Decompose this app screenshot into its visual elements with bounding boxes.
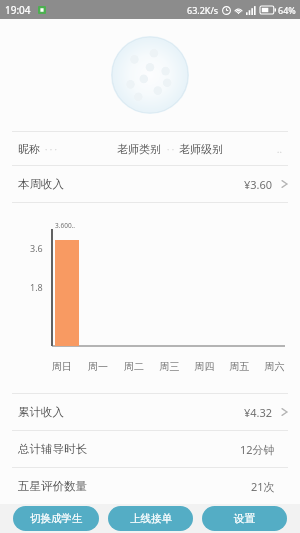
staticText: ¥4.32 [244, 405, 273, 420]
button[interactable]: 五星评价数量 [0, 468, 300, 504]
button[interactable]: 头像 [111, 36, 189, 114]
staticText: 周五 [222, 360, 257, 373]
staticText: 12分钟 [240, 442, 275, 457]
button[interactable]: 切换成学生 [13, 506, 99, 531]
staticText: 五星评价数量 [18, 479, 87, 493]
staticText: 21次 [251, 479, 275, 494]
staticText: 累计收入 [18, 405, 64, 419]
staticText: 周日 [44, 360, 80, 373]
staticText: 周三 [152, 360, 187, 373]
staticText: · · · [45, 143, 57, 155]
staticText: 切换成学生 [30, 512, 83, 525]
button[interactable]: 本周收入 [0, 166, 300, 202]
staticText: 总计辅导时长 [18, 442, 87, 456]
staticText: 3.6 [30, 242, 43, 254]
staticText: 64% [278, 4, 296, 16]
staticText: 上线接单 [130, 512, 172, 525]
staticText: 周六 [257, 360, 292, 373]
staticText: 63.2K/s [187, 4, 219, 16]
staticText: 周二 [116, 360, 152, 373]
staticText: 3.600.. [55, 221, 76, 230]
staticText: 1.8 [30, 281, 43, 293]
staticText: .. [277, 143, 282, 155]
staticText: 周一 [80, 360, 116, 373]
button[interactable]: 总计辅导时长 [0, 431, 300, 467]
staticText: 本周收入 [18, 177, 64, 191]
button[interactable]: 上线接单 [108, 506, 193, 531]
staticText: · · [167, 143, 175, 155]
staticText: 昵称 [18, 142, 40, 156]
staticText: ¥3.60 [244, 177, 273, 192]
staticText: 19:04 [5, 3, 31, 17]
button[interactable]: 昵称 [0, 132, 300, 165]
staticText: 老师级别 [179, 142, 223, 156]
button[interactable]: 设置 [202, 506, 287, 531]
staticText: 老师类别 [117, 142, 161, 156]
staticText: 设置 [234, 512, 255, 525]
button[interactable]: 累计收入 [0, 394, 300, 430]
staticText: 周四 [187, 360, 222, 373]
